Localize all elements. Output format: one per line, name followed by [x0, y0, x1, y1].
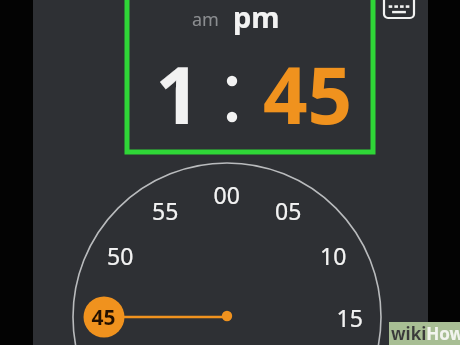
button[interactable] [190, 2, 226, 28]
button[interactable] [231, 0, 287, 32]
button[interactable]: Minute 45 selector [84, 296, 126, 338]
button[interactable]: Switch to keyboard input [384, 0, 416, 22]
button[interactable] [150, 50, 210, 140]
button[interactable] [265, 50, 360, 140]
